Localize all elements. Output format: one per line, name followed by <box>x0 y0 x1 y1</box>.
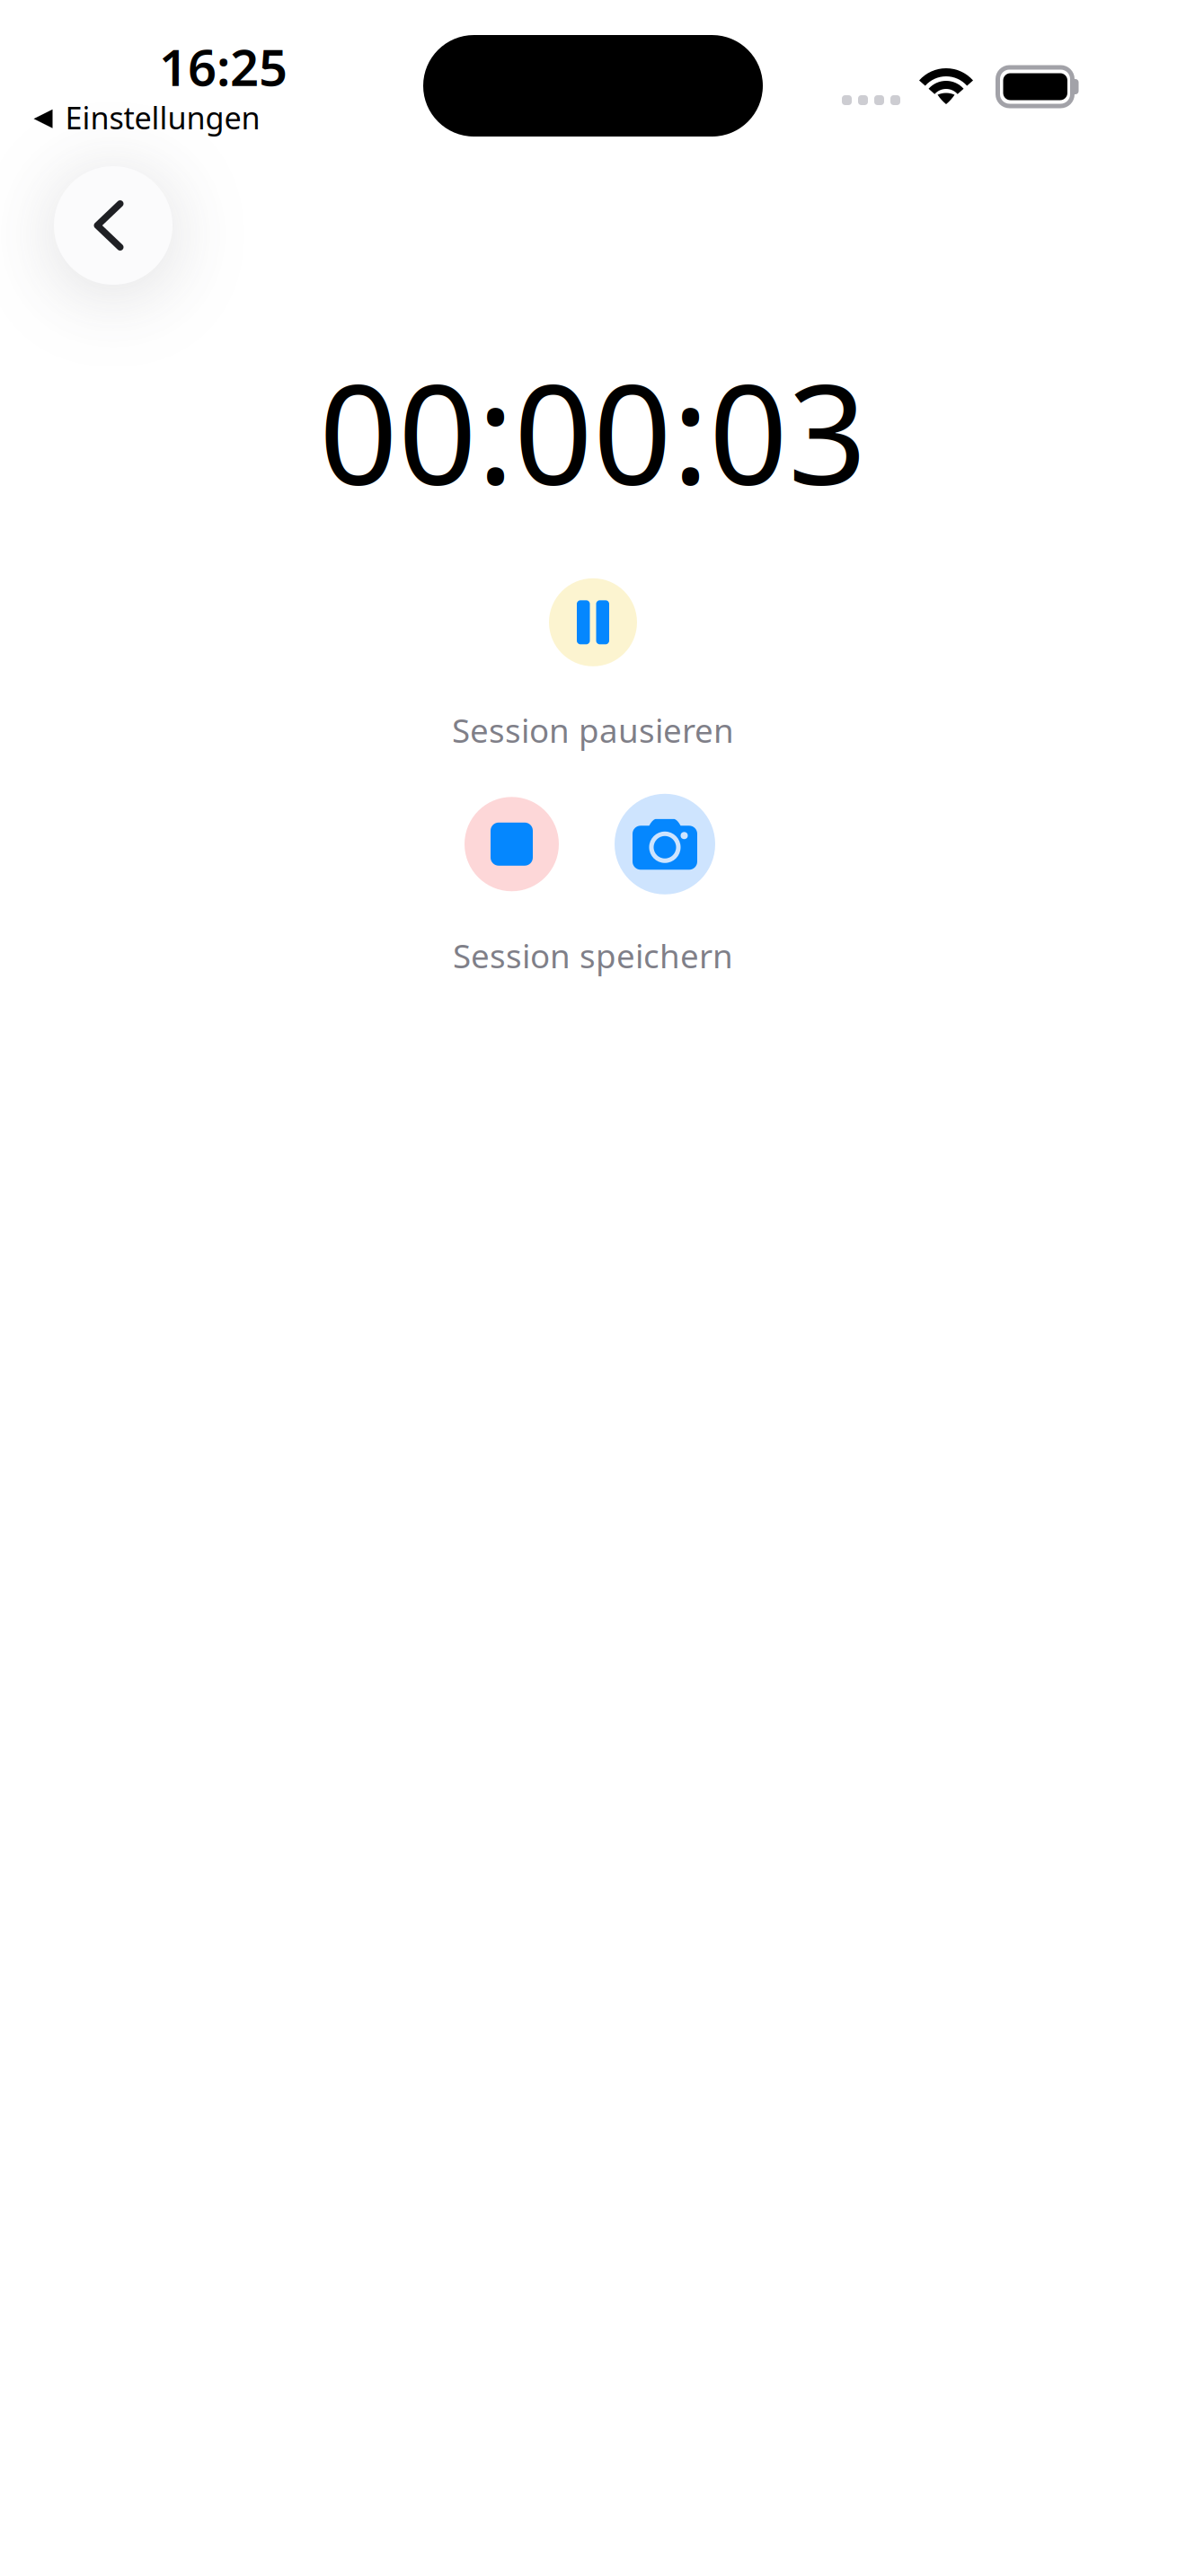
staticText: 16:25 <box>159 32 288 101</box>
button[interactable]: Session pausieren <box>549 578 637 666</box>
staticText: 00:00:03 <box>319 337 867 524</box>
staticText: Session speichern <box>453 933 733 978</box>
button[interactable]: Session stoppen <box>465 797 559 891</box>
button[interactable]: Foto aufnehmen <box>615 794 715 894</box>
staticText: Session pausieren <box>452 708 734 752</box>
button[interactable]: Zurück <box>54 166 173 285</box>
staticText: Einstellungen <box>65 97 260 138</box>
